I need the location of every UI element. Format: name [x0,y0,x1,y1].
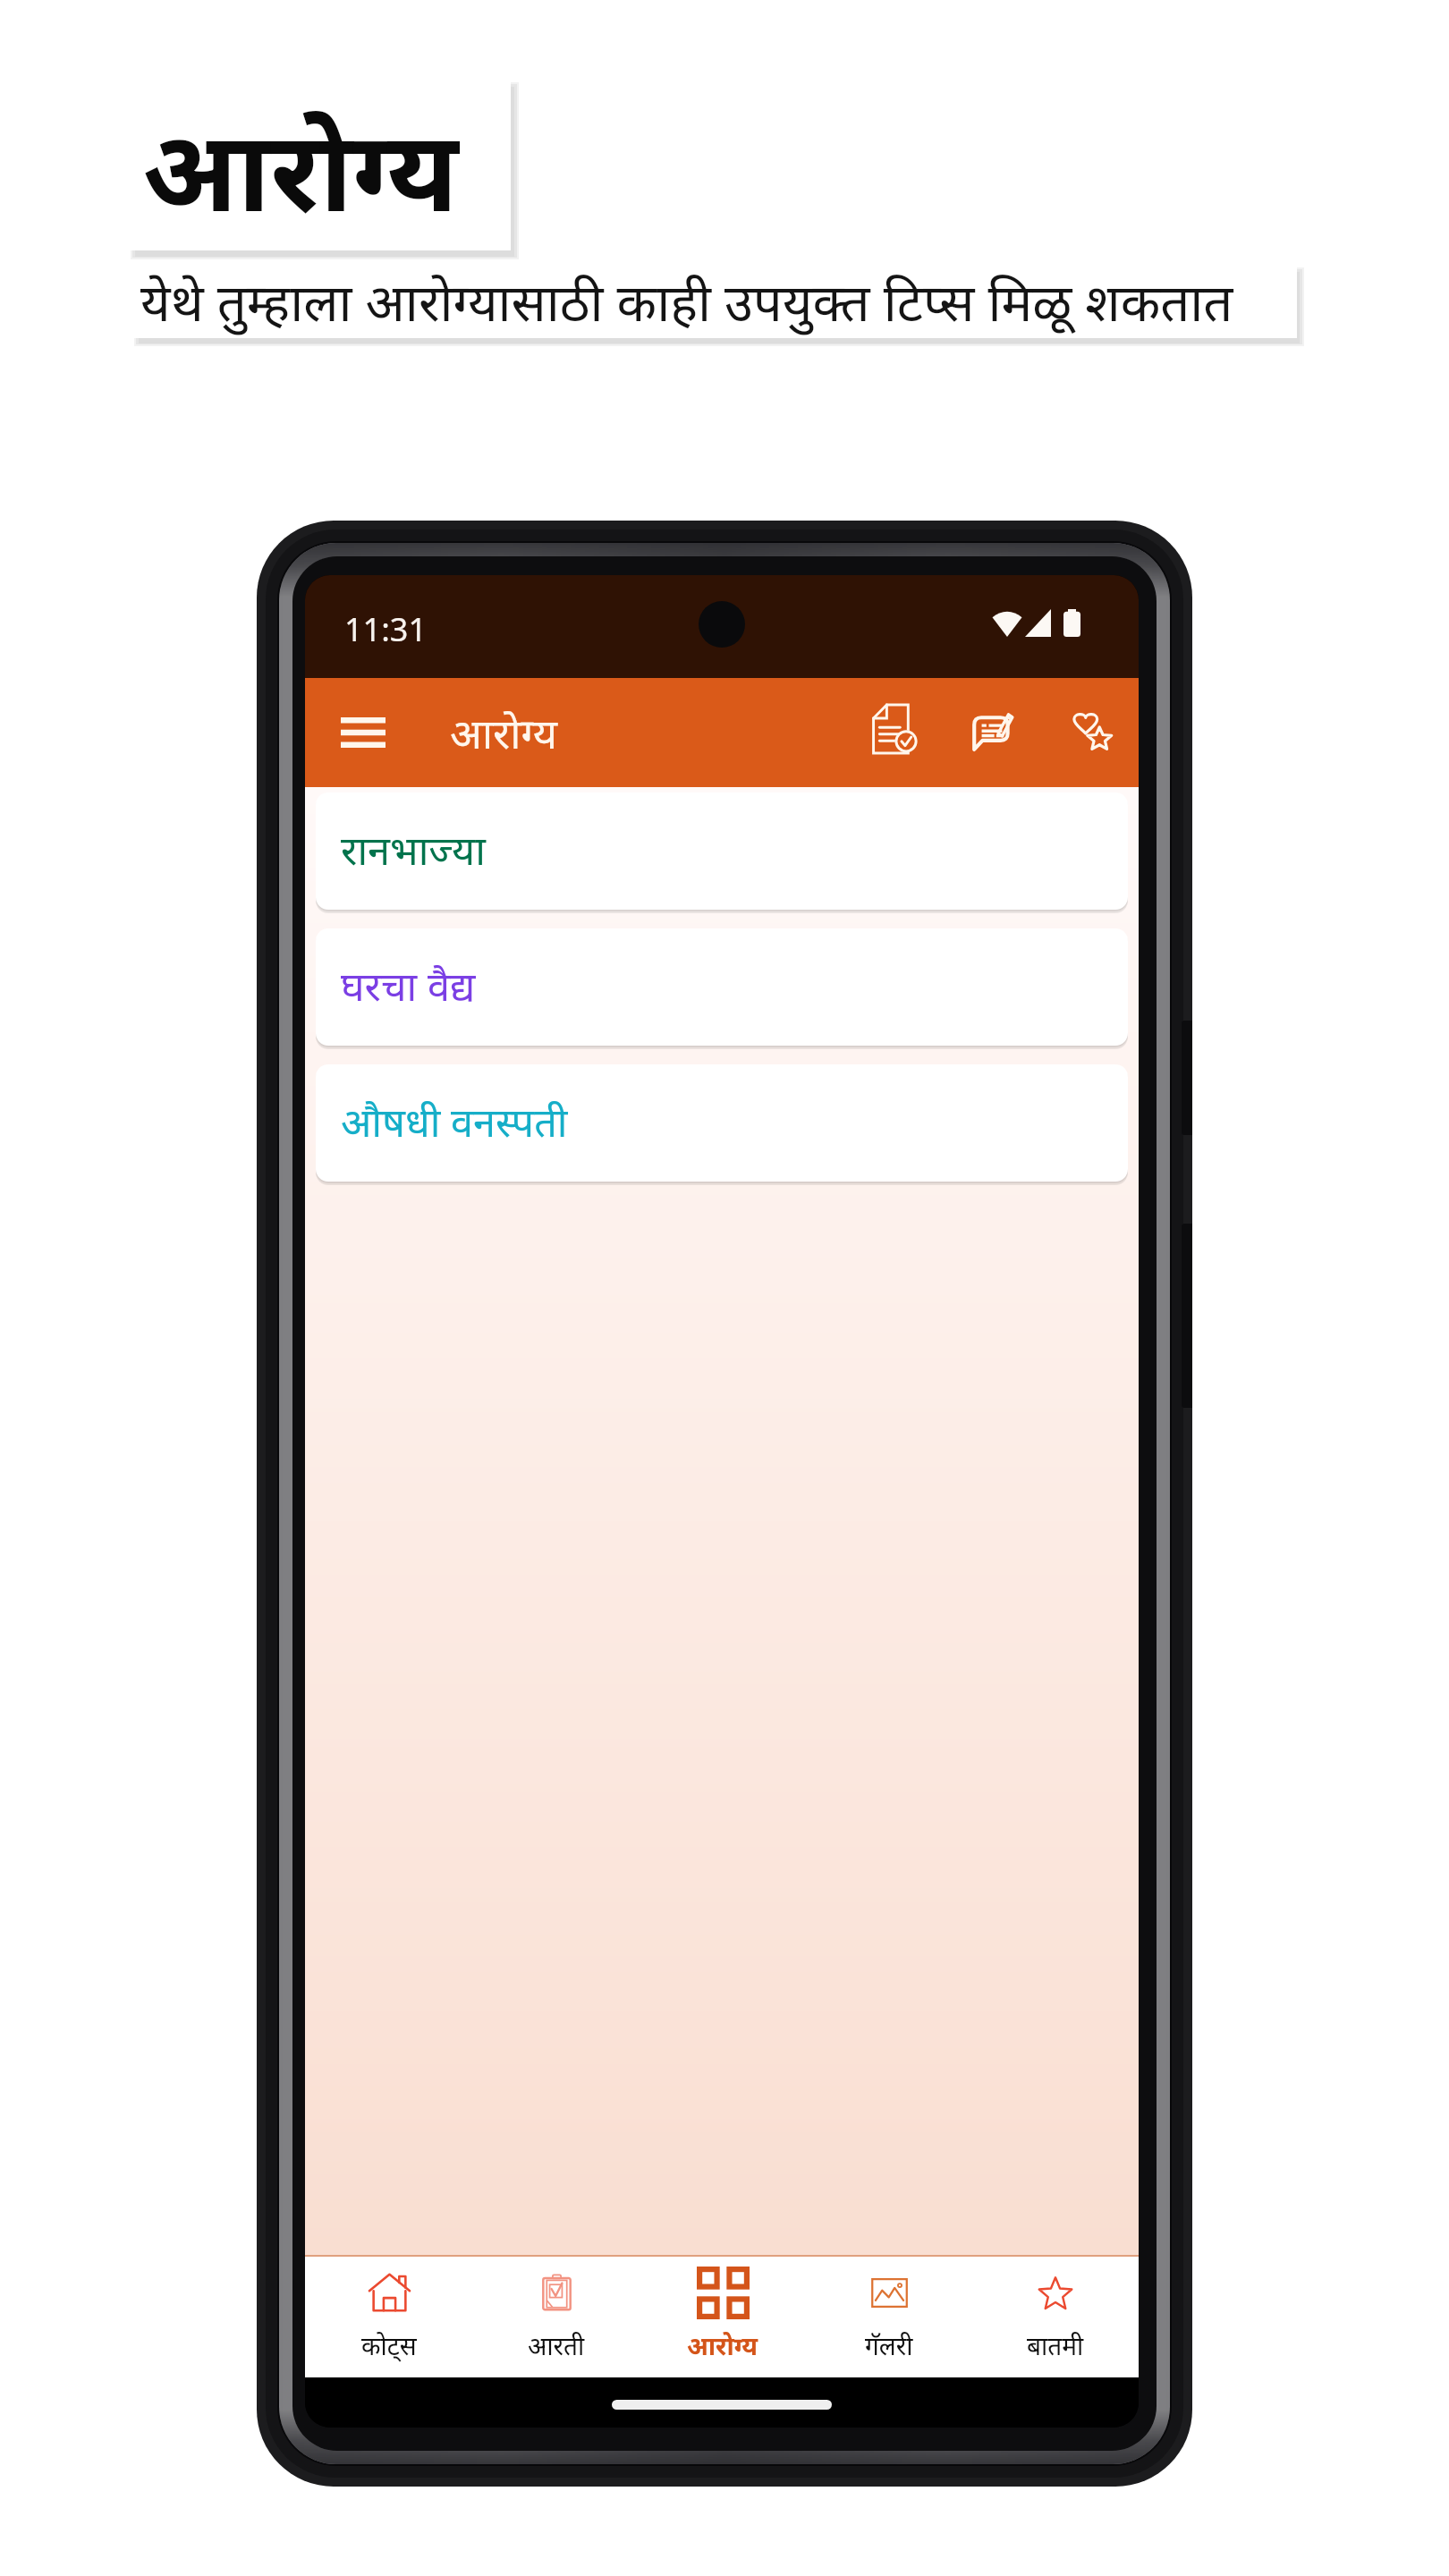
button[interactable]: Saved notes [846,680,943,778]
staticText: आरोग्य [687,2328,758,2362]
button[interactable]: गॅलरी [806,2257,972,2377]
button[interactable]: Open navigation menu [322,688,404,777]
button[interactable]: आरती [472,2257,640,2377]
button[interactable]: आरोग्य [640,2257,806,2377]
staticText: औषधी वनस्पती [341,1094,568,1148]
button[interactable]: Write feedback [944,683,1040,782]
staticText: रानभाज्या [341,822,486,877]
button[interactable]: कोट्स [305,2257,472,2377]
staticText: बातमी [1027,2328,1084,2362]
staticText: कोट्स [361,2328,417,2362]
staticText: आरती [528,2328,585,2362]
staticText: गॅलरी [865,2328,913,2362]
staticText: आरोग्य [450,704,557,761]
button[interactable]: रानभाज्या [316,792,1128,910]
staticText: 11:31 [344,607,428,651]
button[interactable]: औषधी वनस्पती [316,1064,1128,1182]
button[interactable]: Favourites [1044,682,1139,780]
staticText: आरोग्य [142,91,459,243]
button[interactable]: घरचा वैद्य [316,928,1128,1046]
staticText: घरचा वैद्य [341,958,476,1013]
staticText: येथे तुम्हाला आरोग्यासाठी काही उपयुक्त ट… [140,266,1233,336]
button[interactable]: बातमी [972,2257,1139,2377]
